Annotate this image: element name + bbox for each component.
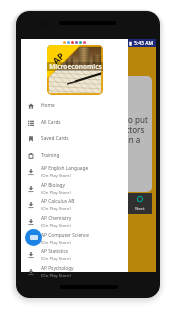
staticText: cause the demand curve to put upward pre… — [31, 114, 148, 155]
button[interactable]: AP Statistics — [21, 246, 128, 263]
staticText: AP English Language — [41, 165, 89, 172]
button[interactable]: cause the demand curve to put upward pre… — [25, 76, 152, 192]
staticText: Microeconomics — [49, 62, 102, 71]
staticText: (On Play Store) — [41, 255, 71, 261]
button[interactable]: Home — [21, 97, 128, 114]
staticText: Next — [135, 205, 145, 211]
button[interactable]: Next — [127, 193, 152, 214]
button[interactable]: All Cards — [21, 114, 128, 131]
staticText: Prev — [34, 205, 43, 211]
button[interactable]: AP Biology — [21, 180, 128, 197]
button[interactable]: AP Psychology — [21, 263, 128, 280]
staticText: (On Play Store) — [41, 189, 71, 195]
staticText: Saved Cards — [41, 135, 69, 142]
staticText: AP Calculus AB — [41, 198, 75, 205]
button[interactable]: AP Chemistry — [21, 213, 128, 230]
staticText: (On Play Store) — [41, 272, 71, 278]
staticText: All Cards — [41, 119, 61, 126]
button[interactable]: AP English Language — [21, 163, 128, 180]
staticText: AP Computer Science — [41, 232, 90, 239]
button[interactable]: Compose — [25, 229, 42, 246]
staticText: 5:43 AM — [134, 40, 154, 47]
staticText: (On Play Store) — [41, 205, 71, 211]
button[interactable]: Prev — [25, 193, 51, 214]
staticText: Home — [41, 102, 55, 109]
button[interactable]: Saved Cards — [21, 130, 128, 147]
staticText: (On Play Store) — [41, 239, 71, 245]
staticText: AP Chemistry — [41, 215, 72, 222]
staticText: AP Psychology — [41, 265, 74, 272]
button[interactable]: AP Calculus AB — [21, 196, 128, 213]
staticText: AP Statistics — [41, 248, 69, 255]
staticText: (On Play Store) — [41, 172, 71, 178]
staticText: AP — [49, 49, 66, 66]
staticText: AP Biology — [41, 182, 66, 189]
button[interactable]: Training — [21, 147, 128, 164]
staticText: (On Play Store) — [41, 222, 71, 228]
button[interactable]: AP — [47, 45, 103, 95]
staticText: Flip — [60, 205, 68, 211]
staticText: Training — [41, 152, 60, 159]
button[interactable]: AP Computer Science — [21, 230, 128, 247]
button[interactable]: Flip — [51, 193, 77, 214]
